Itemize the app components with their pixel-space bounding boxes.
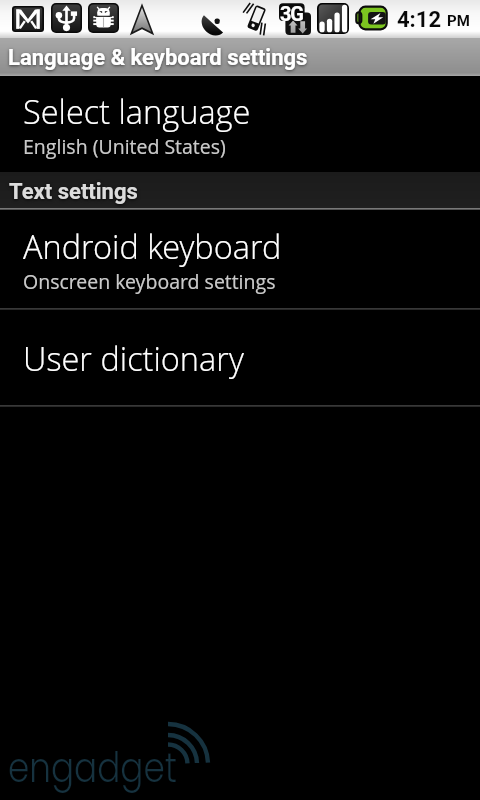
staticText: Text settings xyxy=(9,179,138,205)
staticText: Android keyboard xyxy=(23,224,282,268)
staticText: English (United States) xyxy=(23,133,226,160)
staticText: PM xyxy=(447,12,470,30)
staticText: Select language xyxy=(23,89,251,133)
staticText: 3G xyxy=(280,2,303,25)
button[interactable]: Select language xyxy=(0,76,480,172)
staticText: Language & keyboard settings xyxy=(8,45,308,71)
staticText: 4:12 xyxy=(397,7,442,33)
button[interactable]: Android keyboard xyxy=(0,210,480,308)
staticText: Onscreen keyboard settings xyxy=(23,268,276,295)
staticText: User dictionary xyxy=(23,336,244,380)
button[interactable]: User dictionary xyxy=(0,310,480,405)
staticText: engadget xyxy=(8,738,177,797)
